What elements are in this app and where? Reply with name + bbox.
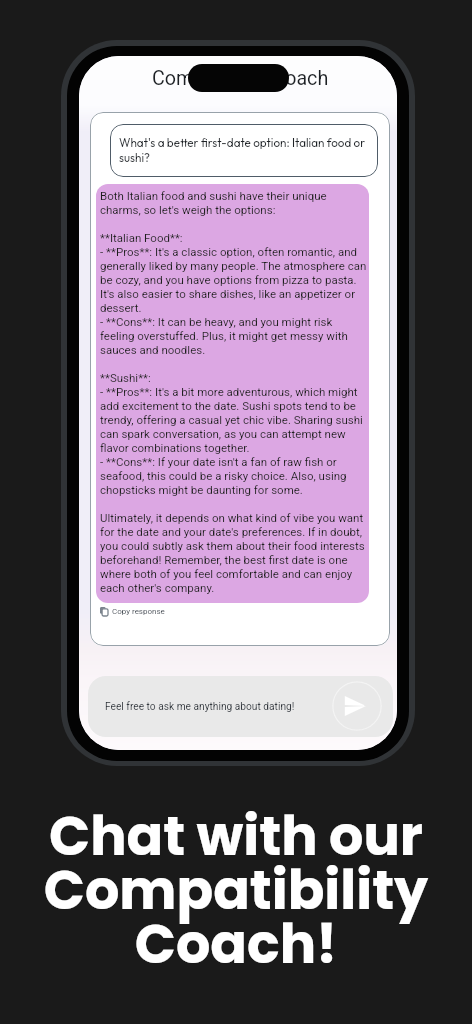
staticText: Chat with our Compatibility Coach!: [0, 798, 472, 982]
button[interactable]: Send message: [332, 681, 382, 731]
button[interactable]: Copy response: [100, 607, 165, 616]
staticText: What's a better first-date option: Itali…: [119, 135, 371, 165]
button[interactable]: Feel free to ask me anything about datin…: [88, 676, 393, 737]
staticText: Both Italian food and sushi have their u…: [100, 189, 367, 595]
button[interactable]: What's a better first-date option: Itali…: [110, 124, 378, 177]
staticText: Compatibility Coach: [152, 67, 329, 90]
staticText: Copy response: [112, 607, 165, 616]
staticText: Feel free to ask me anything about datin…: [105, 701, 295, 713]
